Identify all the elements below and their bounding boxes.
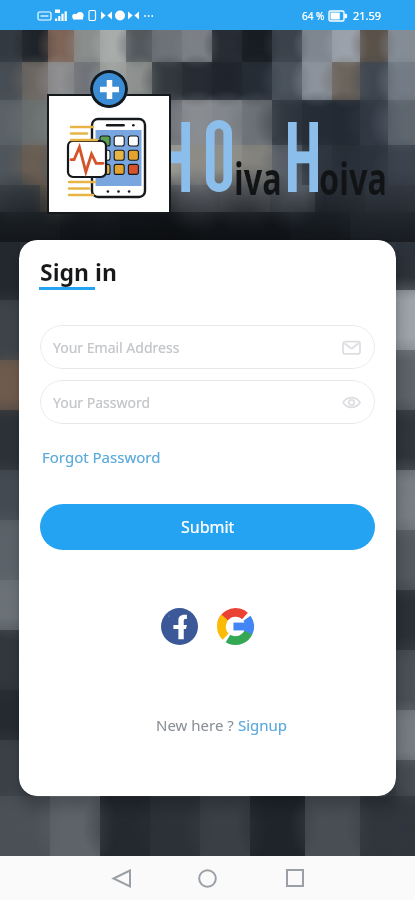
button[interactable]: Forgot Password	[42, 447, 161, 467]
button[interactable]: Back	[97, 856, 145, 900]
staticText: Submit	[181, 516, 235, 538]
staticText: Your Email Address	[53, 338, 180, 357]
staticText: oiva	[319, 147, 387, 208]
staticText: Your Password	[53, 393, 151, 412]
button[interactable]: Sign in with Google	[217, 608, 254, 645]
staticText: Signup	[238, 715, 288, 735]
button[interactable]: Home	[183, 856, 231, 900]
staticText: Sign in	[40, 256, 117, 287]
button[interactable]: Your Password	[40, 380, 375, 424]
button[interactable]: Recents	[271, 856, 319, 900]
button[interactable]: Submit	[40, 504, 375, 550]
button[interactable]: Your Email Address	[40, 325, 375, 369]
button[interactable]: Sign in with Facebook	[161, 608, 198, 645]
staticText: 64 %	[302, 9, 325, 23]
staticText: New here ?	[156, 715, 238, 735]
staticText: iva	[234, 147, 282, 208]
staticText: Forgot Password	[42, 447, 161, 467]
staticText: 21.59	[353, 8, 382, 23]
button[interactable]: Signup	[238, 715, 288, 735]
